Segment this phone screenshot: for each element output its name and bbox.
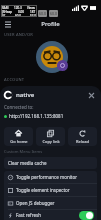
staticText: native <box>16 91 35 99</box>
button[interactable]: Toggle performance monitor <box>4 171 97 183</box>
staticText: Custom Menu Items <box>4 149 43 154</box>
button[interactable]: Clear media cache <box>4 157 97 169</box>
staticText: Copy link <box>42 139 60 144</box>
staticText: Connected to: <box>4 104 34 110</box>
staticText: 9:22 <box>17 3 28 10</box>
staticText: UI <box>2 14 6 16</box>
button[interactable]: Copy link <box>36 127 65 146</box>
button[interactable]: Fast refresh <box>4 210 97 220</box>
staticText: 60.0 <box>39 11 46 16</box>
staticText: RAM <box>2 6 9 10</box>
staticText: 0.00 <box>18 10 24 14</box>
staticText: Reload <box>76 139 89 144</box>
staticText: 60.0 <box>15 14 21 16</box>
button[interactable]: Open JS debugger <box>4 197 97 209</box>
staticText: 53.0 <box>30 14 36 16</box>
staticText: USER AND/OR <box>4 32 33 37</box>
staticText: ACCOUNT <box>4 77 25 82</box>
button[interactable]: Close <box>86 90 96 100</box>
staticText: Toggle element inspector <box>16 187 70 193</box>
staticText: Fast refresh <box>16 212 41 218</box>
button[interactable]: Go home <box>4 127 33 146</box>
staticText: Go home <box>10 139 28 144</box>
staticText: Profile <box>0 20 101 28</box>
button[interactable]: Menu <box>3 19 13 29</box>
staticText: http://192.168.1.135:8081 <box>9 113 64 119</box>
button[interactable]: Toggle element inspector <box>4 184 97 196</box>
staticText: Toggle performance monitor <box>16 174 78 180</box>
staticText: 120.3 <box>14 6 22 10</box>
staticText: 187 <box>30 10 36 14</box>
button[interactable]: Reload <box>68 127 97 146</box>
staticText: Views <box>27 6 36 10</box>
staticText: 60.0 <box>50 11 57 16</box>
staticText: Clear media cache <box>8 160 47 166</box>
staticText: Open JS debugger <box>16 200 55 206</box>
staticText: JSHeap <box>2 10 12 14</box>
